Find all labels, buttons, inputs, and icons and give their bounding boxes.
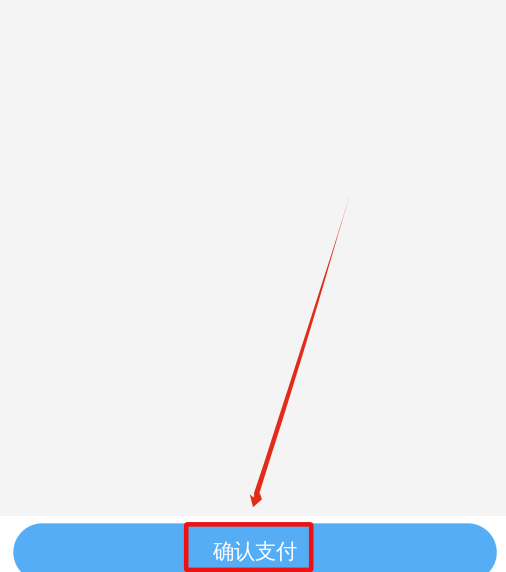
staticText: 确认支付 (213, 538, 297, 564)
button[interactable]: 确认支付 (13, 523, 497, 572)
